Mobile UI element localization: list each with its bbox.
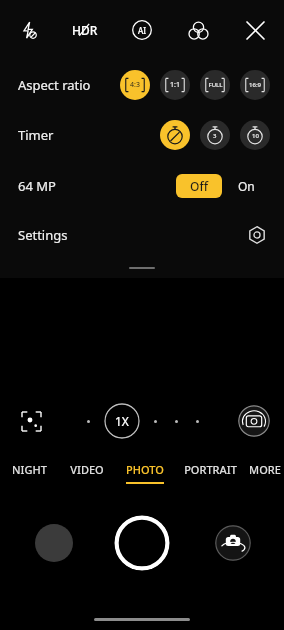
button[interactable]: FULL: [200, 70, 230, 100]
staticText: FULL: [208, 81, 223, 89]
staticText: NIGHT: [12, 462, 47, 477]
staticText: AI: [138, 25, 147, 36]
button[interactable]: HDR off: [56, 0, 113, 60]
staticText: 16:9: [249, 81, 261, 89]
button[interactable]: 4:3: [120, 70, 150, 100]
button[interactable]: Off: [176, 174, 222, 198]
staticText: 1:1: [170, 80, 180, 90]
staticText: 64 MP: [18, 177, 56, 195]
button[interactable]: Flash off: [0, 0, 56, 60]
staticText: On: [238, 178, 255, 194]
button[interactable]: Macro focus: [14, 404, 48, 438]
button[interactable]: 16:9: [240, 70, 270, 100]
button[interactable]: Filters: [170, 0, 227, 60]
staticText: Timer: [18, 126, 54, 144]
staticText: Aspect ratio: [18, 76, 91, 94]
button[interactable]: On: [222, 174, 270, 198]
staticText: 4:3: [130, 80, 140, 90]
button[interactable]: AI camera: [238, 405, 270, 437]
button[interactable]: MORE: [246, 453, 284, 493]
button[interactable]: Timer off: [160, 120, 190, 150]
staticText: Off: [190, 178, 208, 194]
button[interactable]: PORTRAIT: [174, 453, 246, 493]
button[interactable]: NIGHT: [0, 453, 58, 493]
button[interactable]: PHOTO: [116, 453, 174, 493]
staticText: PHOTO: [126, 462, 164, 477]
button[interactable]: Switch camera: [215, 525, 251, 561]
staticText: VIDEO: [70, 462, 104, 477]
button[interactable]: AI scene detection: [113, 0, 170, 60]
staticText: HDR: [72, 22, 98, 38]
button[interactable]: Close: [227, 0, 284, 60]
button[interactable]: 10 second timer: [240, 120, 270, 150]
button[interactable]: VIDEO: [58, 453, 116, 493]
button[interactable]: 1X: [104, 403, 140, 439]
staticText: Settings: [18, 226, 68, 244]
staticText: MORE: [249, 462, 281, 477]
button[interactable]: Settings: [0, 212, 284, 258]
staticText: PORTRAIT: [184, 462, 237, 477]
button[interactable]: 3 second timer: [200, 120, 230, 150]
button[interactable]: Shutter: [114, 515, 170, 571]
staticText: 10: [252, 132, 259, 140]
staticText: 1X: [115, 413, 129, 429]
staticText: 3: [213, 132, 217, 140]
button[interactable]: Gallery: [35, 524, 73, 562]
button[interactable]: 1:1: [160, 70, 190, 100]
